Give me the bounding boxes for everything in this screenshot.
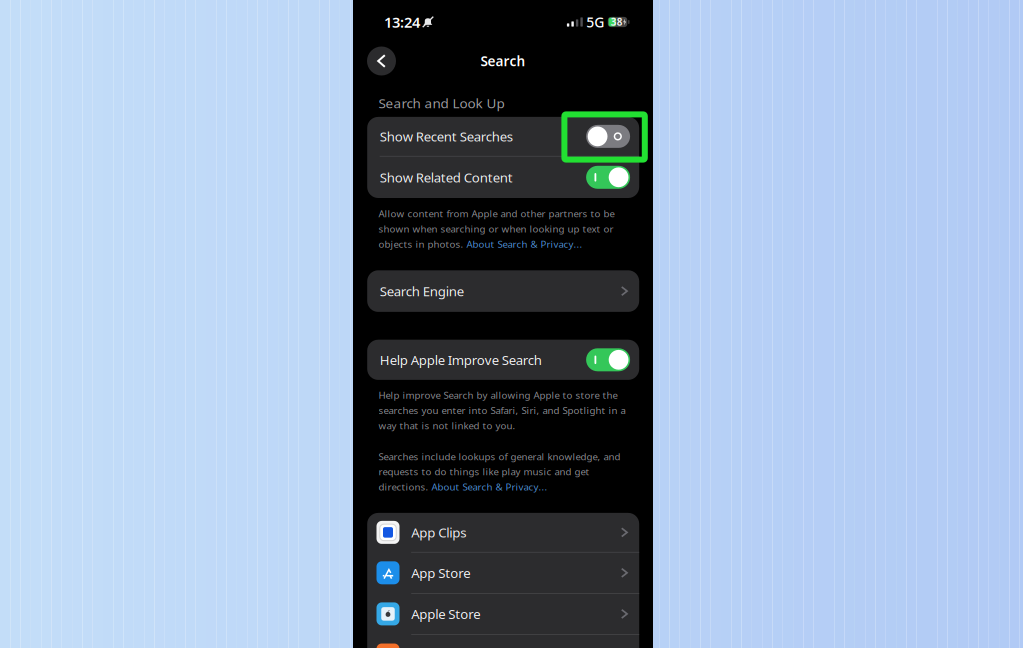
- staticText: directions.: [378, 480, 431, 493]
- staticText: Show Recent Searches: [380, 127, 513, 145]
- staticText: Search Engine: [380, 282, 464, 300]
- staticText: Help Apple Improve Search: [380, 351, 542, 369]
- staticText: About Search & Privacy...: [466, 237, 582, 251]
- staticText: 5G: [586, 12, 604, 32]
- staticText: objects in photos.: [378, 237, 466, 251]
- staticText: requests to do things like play music an…: [378, 465, 589, 478]
- staticText: Search and Look Up: [378, 94, 504, 112]
- staticText: 13:24: [384, 12, 420, 32]
- staticText: Help improve Search by allowing Apple to…: [378, 388, 617, 402]
- button[interactable]: Show Recent Searches: [367, 117, 639, 156]
- staticText: About Search & Privacy...: [431, 480, 547, 493]
- staticText: Search: [480, 52, 525, 70]
- staticText: Searches include lookups of general know…: [378, 450, 620, 463]
- button[interactable]: Show Related Content: [367, 157, 639, 198]
- button[interactable]: Search Engine: [367, 270, 639, 312]
- staticText: shown when searching or when looking up …: [378, 222, 613, 235]
- staticText: 38: [611, 15, 623, 29]
- button[interactable]: Back: [367, 46, 396, 75]
- staticText: Show Related Content: [380, 168, 513, 186]
- button[interactable]: About Search & Privacy...: [431, 480, 547, 493]
- button[interactable]: Books: [367, 635, 639, 648]
- button[interactable]: About Search & Privacy...: [466, 237, 582, 251]
- staticText: App Clips: [411, 523, 466, 541]
- button[interactable]: Help Apple Improve Search: [367, 340, 639, 380]
- button[interactable]: App Store: [367, 553, 639, 593]
- staticText: searches you enter into Safari, Siri, an…: [378, 404, 625, 417]
- button[interactable]: App Clips: [367, 513, 639, 552]
- staticText: Allow content from Apple and other partn…: [378, 207, 614, 220]
- button[interactable]: Apple Store: [367, 594, 639, 634]
- staticText: App Store: [411, 564, 470, 582]
- staticText: way that is not linked to you.: [378, 419, 515, 432]
- staticText: Apple Store: [411, 605, 480, 623]
